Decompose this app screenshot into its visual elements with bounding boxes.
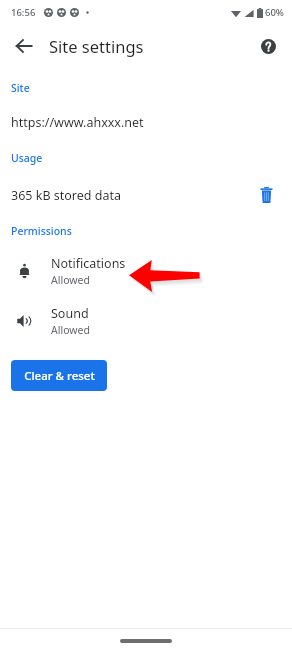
staticText: Clear & reset bbox=[24, 368, 95, 384]
staticText: 365 kB stored data bbox=[11, 187, 121, 204]
staticText: https://www.ahxxx.net bbox=[11, 114, 144, 131]
staticText: Site bbox=[11, 81, 30, 95]
staticText: Site settings bbox=[49, 35, 144, 57]
staticText: Notifications bbox=[51, 255, 126, 272]
staticText: Permissions bbox=[11, 224, 72, 238]
button[interactable]: Back bbox=[6, 28, 42, 64]
button[interactable]: Sound bbox=[0, 300, 292, 342]
button[interactable]: Help bbox=[250, 28, 286, 64]
staticText: Allowed bbox=[51, 323, 90, 337]
button[interactable]: Delete stored data bbox=[250, 179, 282, 211]
staticText: Sound bbox=[51, 305, 89, 322]
button[interactable]: 365 kB stored data bbox=[0, 178, 292, 212]
button[interactable]: Notifications bbox=[0, 250, 292, 292]
staticText: 60% bbox=[265, 6, 284, 19]
staticText: 16:56 bbox=[11, 6, 36, 19]
staticText: Usage bbox=[11, 151, 43, 165]
button[interactable]: Clear & reset bbox=[11, 360, 107, 391]
staticText: Allowed bbox=[51, 273, 90, 287]
